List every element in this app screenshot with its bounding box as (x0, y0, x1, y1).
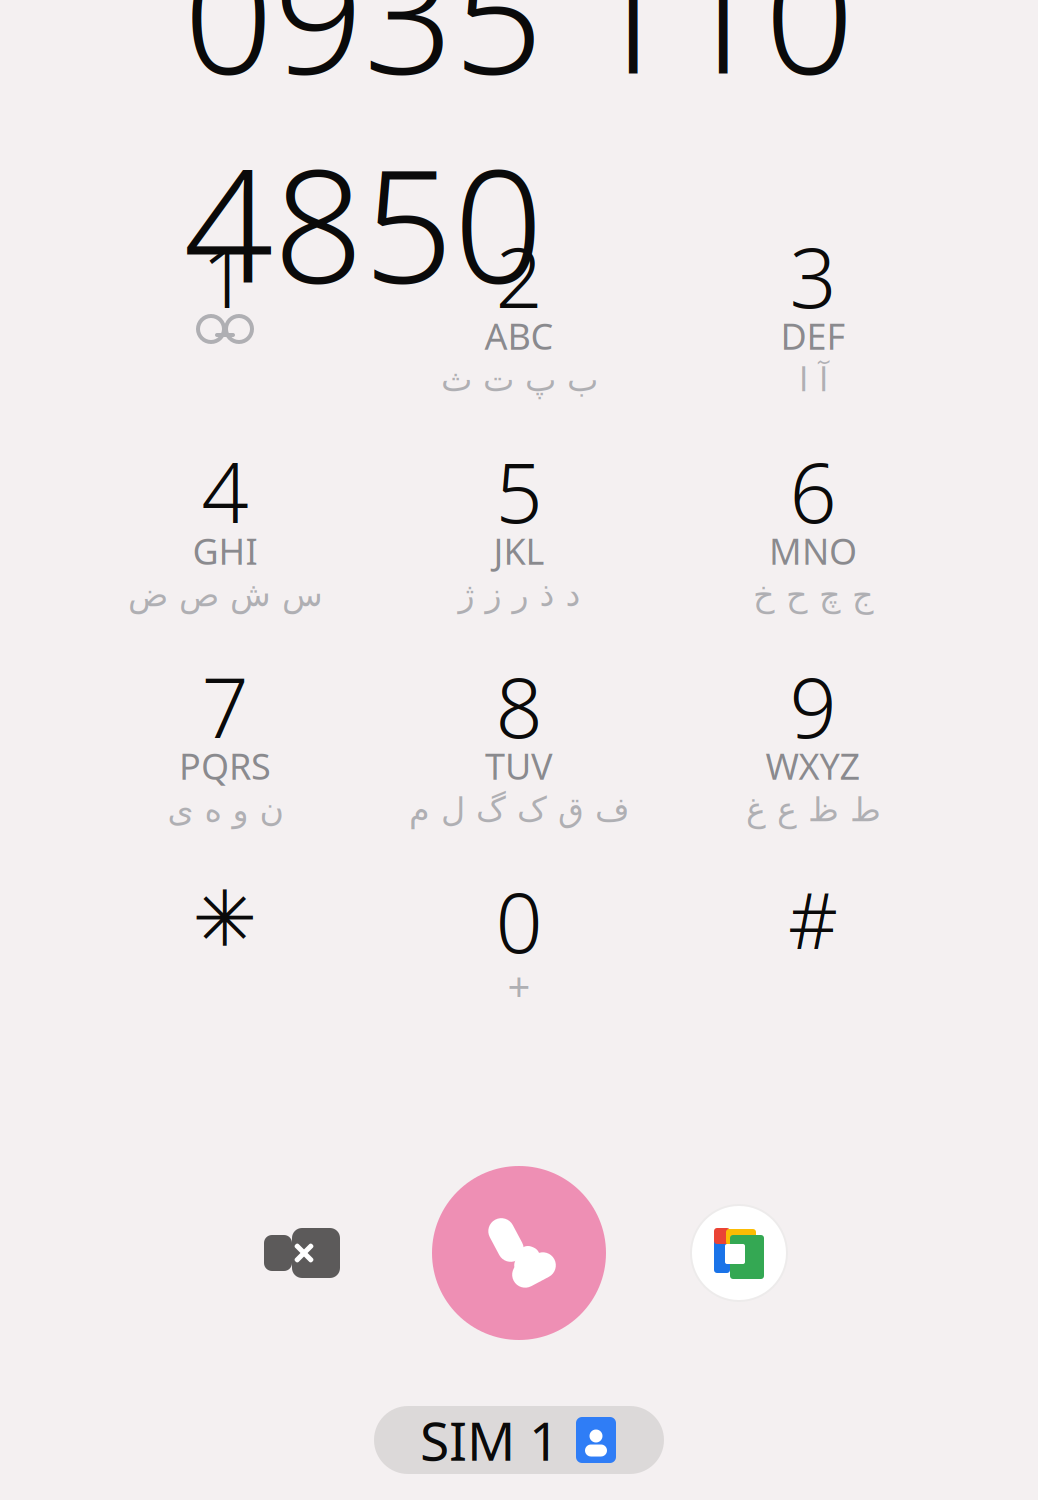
staticText: JKL (493, 527, 544, 575)
button[interactable]: 8 (379, 670, 659, 875)
staticText: + (507, 959, 530, 1012)
staticText: WXYZ (765, 742, 860, 790)
button[interactable]: SIM 1 (374, 1406, 664, 1474)
staticText: GHI (192, 527, 257, 575)
button[interactable]: 9 (673, 670, 953, 875)
staticText: MNO (769, 527, 857, 575)
button[interactable]: # (673, 885, 953, 1090)
button[interactable]: 3 (673, 240, 953, 445)
button[interactable]: 6 (673, 455, 953, 660)
staticText: ط ظ ع غ (745, 791, 880, 829)
button[interactable]: 1 (85, 240, 365, 445)
button[interactable]: 0 (379, 885, 659, 1090)
staticText: 3 (789, 221, 836, 331)
staticText: 4 (201, 436, 248, 546)
button[interactable]: Backspace (224, 1198, 374, 1308)
staticText: 0 (495, 866, 542, 976)
staticText: 9 (789, 651, 836, 761)
staticText: س ش ص ض (127, 576, 322, 614)
staticText: آ ا (798, 361, 827, 399)
button[interactable]: Video call with Google Meet (619, 1153, 859, 1353)
staticText: DEF (780, 312, 845, 360)
button[interactable]: 4 (85, 455, 365, 660)
staticText: ✳ (192, 875, 257, 963)
staticText: ج چ ح خ (752, 576, 873, 614)
staticText: TUV (485, 742, 553, 790)
button[interactable]: 7 (85, 670, 365, 875)
staticText: 2 (495, 221, 542, 331)
staticText: 8 (495, 651, 542, 761)
staticText: SIM 1 (420, 1405, 560, 1475)
staticText: 0935 110 4850 (183, 0, 854, 326)
staticText: د ذ ر ز ژ (458, 576, 580, 614)
staticText: ن و ه ی (167, 791, 283, 829)
staticText: 7 (201, 651, 248, 761)
staticText: 5 (495, 436, 542, 546)
staticText: PQRS (179, 742, 271, 790)
staticText: 1 (201, 221, 248, 331)
staticText: 6 (789, 436, 836, 546)
button[interactable]: ✳ (85, 885, 365, 1090)
staticText: # (788, 868, 838, 970)
staticText: ف ق ک گ ل م (408, 791, 629, 829)
staticText: ب پ ت ث (440, 361, 597, 399)
button[interactable]: 5 (379, 455, 659, 660)
button[interactable]: 2 (379, 240, 659, 445)
staticText: ABC (484, 312, 553, 360)
button[interactable]: Call (419, 1153, 619, 1353)
